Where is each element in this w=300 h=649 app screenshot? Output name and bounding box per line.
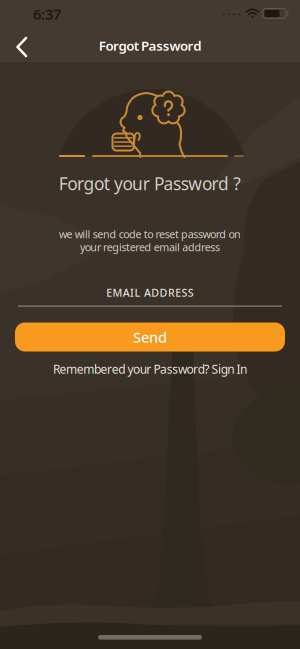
- staticText: Remembered your Password? Sign In: [53, 361, 247, 377]
- button[interactable]: Send: [15, 322, 285, 351]
- staticText: Forgot your Password ?: [59, 172, 241, 195]
- button[interactable]: Back: [1, 24, 45, 70]
- staticText: we will send code to reset password on: [59, 227, 241, 241]
- staticText: Forgot Password: [99, 37, 201, 54]
- staticText: your registered email address: [80, 240, 220, 254]
- button[interactable]: Remembered your Password? Sign In: [53, 361, 247, 377]
- staticText: EMAIL ADDRESS: [106, 285, 194, 300]
- staticText: 6:37: [33, 4, 61, 24]
- button[interactable]: Email address: [18, 285, 282, 307]
- staticText: Send: [133, 327, 167, 347]
